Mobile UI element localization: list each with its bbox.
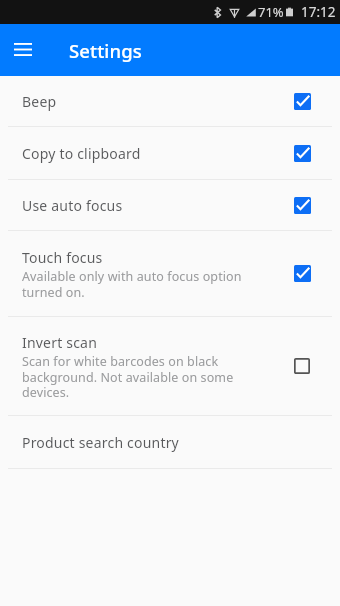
button[interactable]: Copy to clipboard — [0, 127, 340, 180]
staticText: Product search country — [22, 433, 179, 452]
staticText: Scan for white barcodes on black backgro… — [22, 353, 234, 400]
staticText: Touch focus — [22, 248, 103, 267]
staticText: Settings — [69, 38, 142, 63]
staticText: Use auto focus — [22, 196, 123, 215]
staticText: Available only with auto focus option tu… — [22, 268, 242, 300]
staticText: 17:12 — [301, 3, 336, 21]
button[interactable]: Unchecked — [285, 349, 319, 383]
button[interactable]: Checked — [285, 84, 319, 118]
button[interactable]: Product search country — [0, 416, 340, 469]
button[interactable]: Checked — [285, 188, 319, 222]
staticText: Invert scan — [22, 333, 98, 352]
button[interactable]: Checked — [285, 136, 319, 170]
staticText: 71% — [258, 3, 284, 21]
button[interactable]: Use auto focus — [0, 180, 340, 231]
button[interactable]: Open navigation menu — [6, 32, 40, 66]
button[interactable]: Touch focus — [0, 231, 340, 317]
button[interactable]: Invert scan — [0, 317, 340, 416]
staticText: Beep — [22, 92, 57, 111]
button[interactable]: Checked — [285, 256, 319, 290]
button[interactable]: Beep — [0, 76, 340, 127]
staticText: Copy to clipboard — [22, 144, 141, 163]
